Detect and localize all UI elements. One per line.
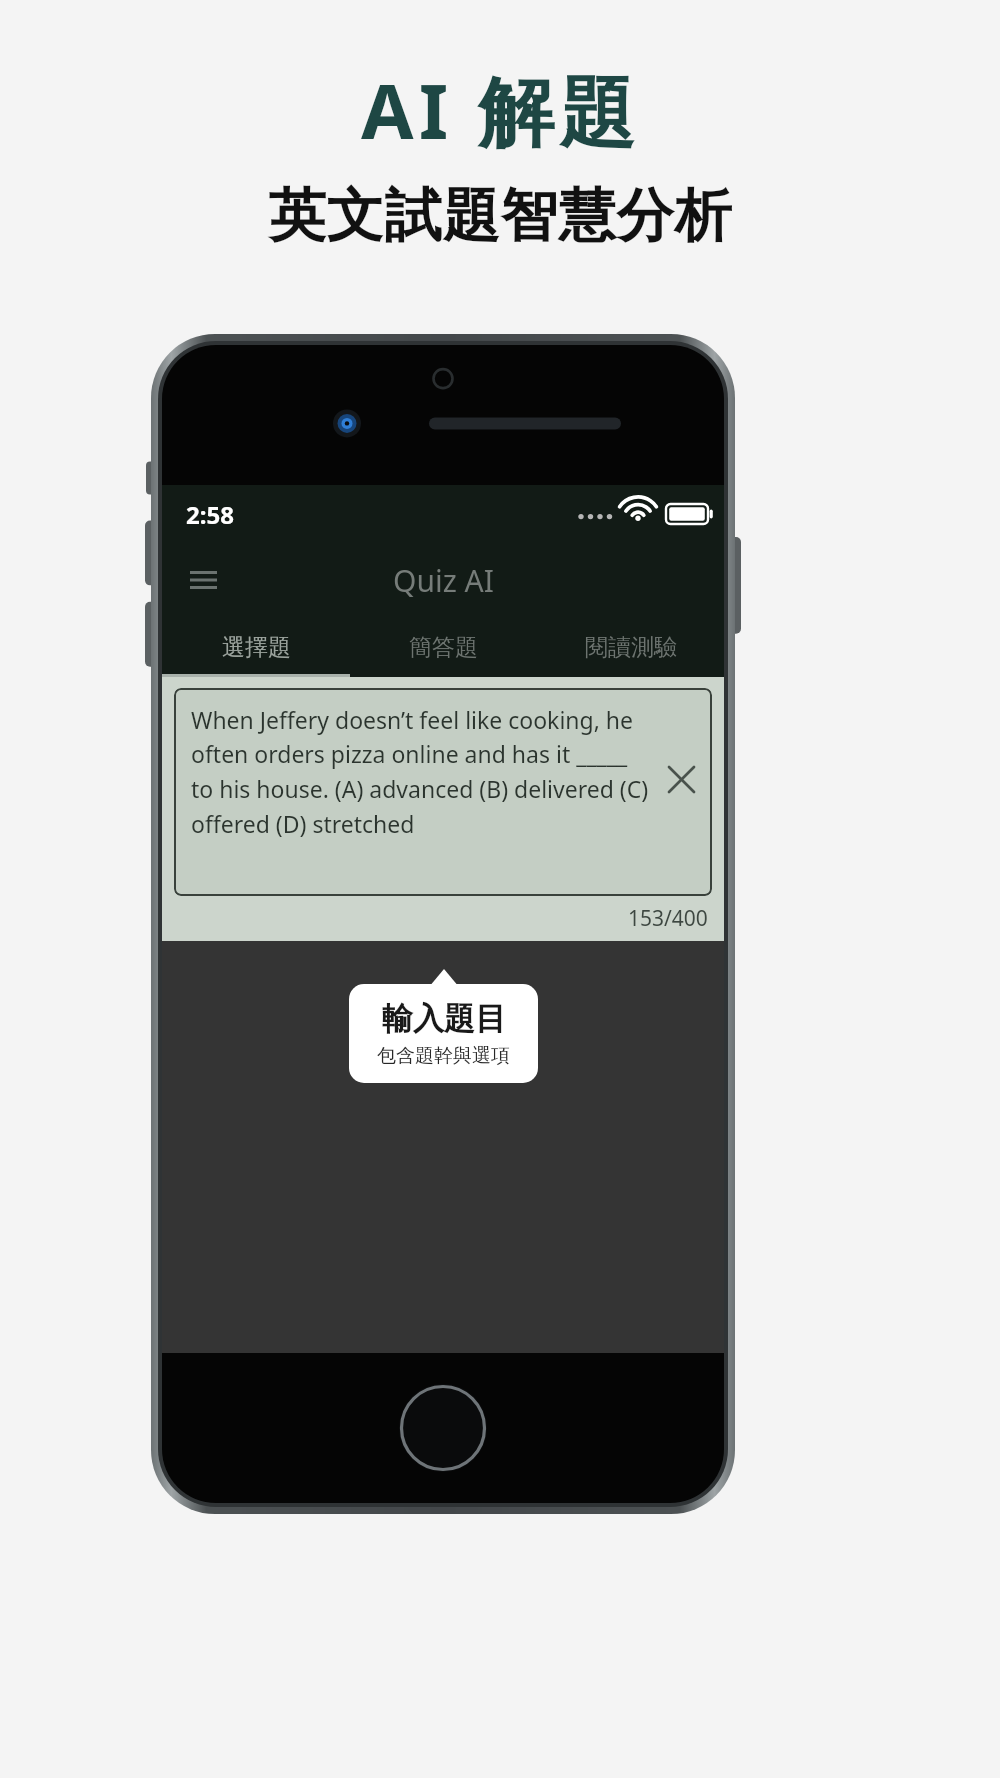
staticText: 包含題幹與選項 xyxy=(377,1044,510,1068)
staticText: 英文試題智慧分析 xyxy=(268,180,732,252)
staticText: 簡答題 xyxy=(409,633,478,662)
button[interactable]: When Jeffery doesn’t feel like cooking, … xyxy=(174,688,712,896)
button[interactable]: 選擇題 xyxy=(162,617,350,677)
staticText: Quiz AI xyxy=(393,560,494,601)
button[interactable]: 閱讀測驗 xyxy=(537,617,724,677)
staticText: 153/400 xyxy=(628,904,708,933)
staticText: AI 解題 xyxy=(361,58,640,162)
staticText: 閱讀測驗 xyxy=(585,633,677,662)
staticText: When Jeffery doesn’t feel like cooking, … xyxy=(191,704,652,840)
button[interactable]: 輸入題目 xyxy=(349,984,538,1083)
button[interactable]: Home xyxy=(399,1384,487,1472)
staticText: 2:58 xyxy=(186,498,234,531)
button[interactable]: 簡答題 xyxy=(350,617,537,677)
staticText: 選擇題 xyxy=(222,633,291,662)
button[interactable]: Clear text xyxy=(652,750,710,808)
staticText: 輸入題目 xyxy=(382,999,506,1038)
button[interactable]: Open navigation menu xyxy=(174,551,232,609)
